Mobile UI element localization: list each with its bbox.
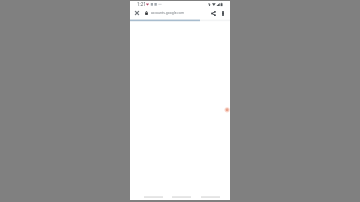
- staticText: accounts.google.com: [151, 10, 185, 14]
- button[interactable]: Recents: [198, 188, 223, 200]
- button[interactable]: Home: [169, 188, 194, 200]
- button[interactable]: Share: [208, 8, 218, 18]
- button[interactable]: More options: [218, 8, 228, 18]
- button[interactable]: Close: [132, 8, 142, 18]
- button[interactable]: Back: [141, 188, 166, 200]
- staticText: 1:21: [137, 1, 146, 7]
